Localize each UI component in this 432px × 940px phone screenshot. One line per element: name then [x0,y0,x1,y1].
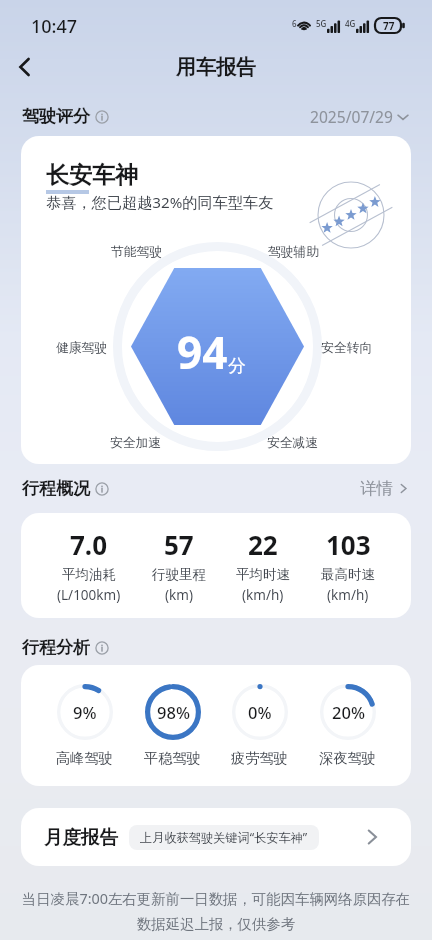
staticText: 节能驾驶 [111,244,163,260]
staticText: 22 [248,527,278,562]
staticText: 行程分析 [22,637,90,658]
staticText: 57 [164,527,194,562]
staticText: 行驶里程 [152,566,206,583]
staticText: 驾驶辅助 [268,244,320,260]
staticText: 行程概况 [22,478,90,499]
button[interactable]: 详情 [357,475,412,502]
staticText: 9% [73,701,97,723]
staticText: 长安车神 [46,161,138,190]
staticText: 上月收获驾驶关键词“长安车神” [140,829,308,846]
staticText: 数据延迟上报，仅供参考 [8,915,424,933]
staticText: 平均油耗 [62,566,116,583]
button[interactable]: 98% [144,684,201,767]
button[interactable]: 9% [56,684,113,767]
staticText: 5G [316,18,327,29]
staticText: 驾驶评分 [22,106,90,127]
staticText: 20% [332,701,365,723]
staticText: (L/100km) [57,586,121,604]
staticText: (km/h) [242,586,284,604]
staticText: 安全加速 [110,435,162,451]
staticText: 疲劳驾驶 [231,749,288,767]
staticText: 当日凌晨7:00左右更新前一日数据，可能因车辆网络原因存在 [8,889,424,909]
button[interactable]: 0% [231,684,288,767]
staticText: 0% [248,701,272,723]
staticText: 深夜驾驶 [319,749,376,767]
staticText: 6 [292,18,297,29]
button[interactable]: 2025/07/29 [307,103,412,130]
staticText: 高峰驾驶 [56,749,113,767]
staticText: 恭喜，您已超越32%的同车型车友 [46,192,274,213]
staticText: 77 [383,19,395,33]
staticText: 4G [345,18,356,29]
button[interactable]: 20% [319,684,376,767]
staticText: 平均时速 [236,566,290,583]
button[interactable]: 长安车神 [21,136,411,464]
staticText: (km) [165,586,193,604]
staticText: 平稳驾驶 [144,749,201,767]
staticText: 7.0 [70,527,108,562]
staticText: 用车报告 [176,55,256,80]
staticText: 最高时速 [321,566,375,583]
staticText: 月度报告 [44,826,118,849]
staticText: 详情 [360,478,393,499]
staticText: 98% [157,701,190,723]
staticText: 安全转向 [321,340,373,356]
button[interactable]: Back [4,46,46,88]
staticText: 103 [326,527,371,562]
button[interactable]: 月度报告 [21,808,411,866]
staticText: 94 [177,322,228,382]
staticText: 分 [228,355,246,378]
staticText: 10:47 [31,14,78,39]
staticText: 健康驾驶 [56,340,108,356]
staticText: 安全减速 [267,435,319,451]
staticText: (km/h) [327,586,369,604]
staticText: 2025/07/29 [310,106,393,127]
